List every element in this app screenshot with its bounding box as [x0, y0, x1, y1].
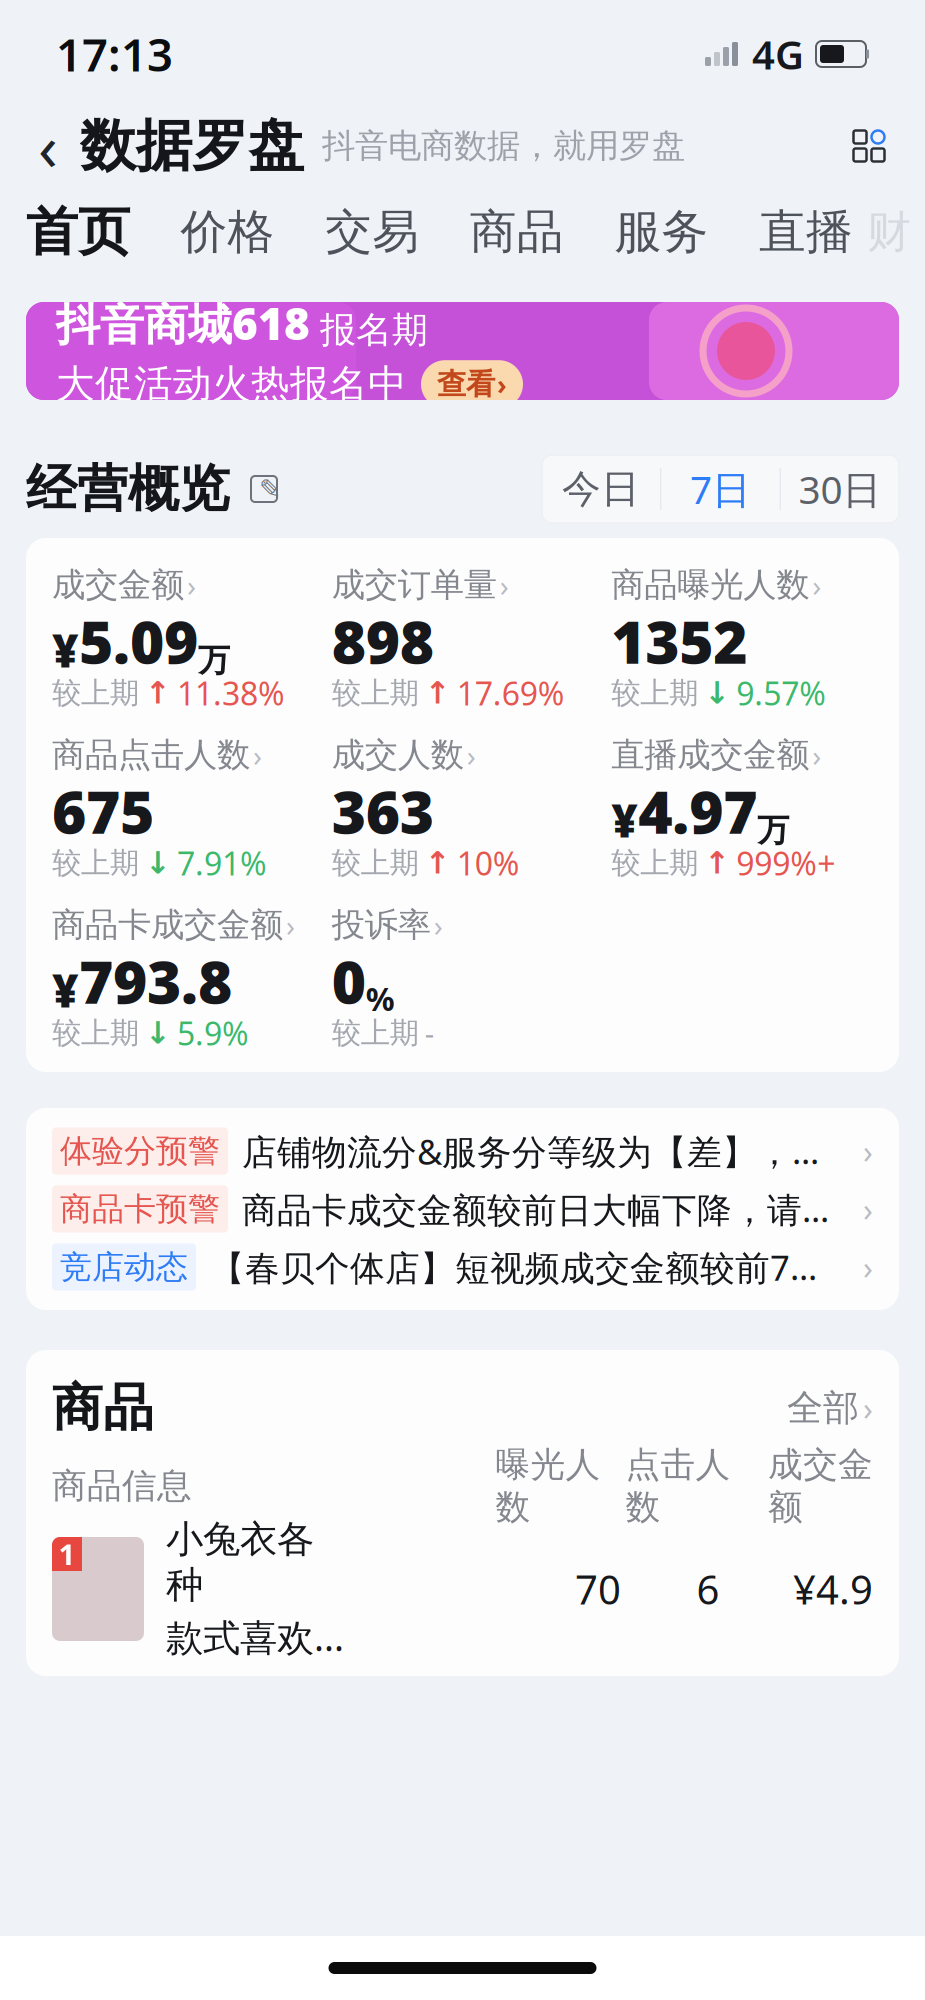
button[interactable]: 竞店动态 [52, 1238, 873, 1296]
staticText: 793.8 [79, 942, 232, 1020]
button[interactable]: Edit metrics [244, 469, 284, 509]
staticText: 商品信息 [52, 1465, 192, 1507]
staticText: 大促活动火热报名中 [56, 360, 407, 408]
staticText: 675 [52, 772, 154, 850]
staticText: 小兔衣各种 [166, 1516, 314, 1608]
staticText: 投诉率 [332, 904, 431, 945]
staticText: 商品点击人数 [52, 734, 250, 775]
staticText: › [187, 565, 196, 604]
staticText: % [366, 977, 395, 1020]
button[interactable]: 商品 [470, 200, 564, 264]
button[interactable]: 成交订单量 [332, 568, 593, 708]
button[interactable]: 直播成交金额 [611, 738, 873, 878]
staticText: ¥ [611, 790, 638, 850]
button[interactable]: 商品点击人数 [52, 738, 314, 878]
staticText: 数据罗盘 [80, 112, 304, 180]
staticText: 1 [58, 1534, 75, 1573]
staticText: ‹ [38, 103, 58, 188]
staticText: 1352 [611, 602, 747, 680]
staticText: 6 [696, 1562, 719, 1615]
staticText: 竞店动态 [60, 1247, 188, 1287]
staticText: › [434, 905, 443, 944]
staticText: › [467, 735, 476, 774]
staticText: › [863, 1130, 873, 1172]
staticText: 查看 [437, 366, 495, 402]
staticText: 店铺物流分&服务分等级为【差】，影响... [242, 1128, 831, 1174]
staticText: 今日 [562, 465, 640, 513]
staticText: 商品卡成交金额 [52, 904, 283, 945]
staticText: 直播 [759, 203, 853, 261]
staticText: 较上期 [52, 675, 139, 711]
staticText: ↓ [704, 676, 730, 710]
staticText: - [425, 1013, 434, 1052]
staticText: 5.9% [177, 1012, 249, 1054]
staticText: ✎ [259, 474, 281, 504]
staticText: 成交订单量 [332, 564, 497, 605]
staticText: 直播成交金额 [611, 734, 809, 775]
button[interactable]: 首页 [26, 200, 130, 264]
staticText: 7.91% [177, 842, 267, 884]
button[interactable]: 商品卡成交金额 [52, 908, 314, 1048]
staticText: ¥ [52, 960, 79, 1020]
staticText: 较上期 [52, 845, 139, 881]
button[interactable]: 交易 [325, 200, 419, 264]
staticText: 11.38% [177, 672, 285, 714]
staticText: 全部 [787, 1386, 859, 1430]
staticText: 经营概览 [26, 458, 230, 520]
staticText: 财 [867, 205, 911, 259]
staticText: 抖音电商数据，就用罗盘 [322, 125, 685, 166]
staticText: 万 [198, 641, 230, 680]
staticText: 成交人数 [332, 734, 464, 775]
staticText: 商品 [52, 1377, 154, 1439]
staticText: › [500, 565, 509, 604]
button[interactable]: 价格 [181, 200, 275, 264]
staticText: › [253, 735, 262, 774]
staticText: 成交金额 [768, 1443, 873, 1529]
button[interactable]: 商品卡预警 [52, 1180, 873, 1238]
button[interactable]: 今日 [542, 455, 660, 523]
staticText: 5.09 [79, 602, 198, 680]
button[interactable]: 商品曝光人数 [611, 568, 873, 708]
staticText: ¥4.9 [793, 1562, 873, 1615]
staticText: 17:13 [56, 24, 173, 84]
button[interactable]: 抖音商城618 [26, 302, 899, 400]
staticText: ↑ [425, 846, 451, 880]
staticText: 商品曝光人数 [611, 564, 809, 605]
button[interactable]: 投诉率 [332, 908, 593, 1048]
staticText: 万 [757, 811, 789, 850]
button[interactable]: 服务 [614, 200, 708, 264]
button[interactable]: 成交金额 [52, 568, 314, 708]
staticText: › [863, 1246, 873, 1288]
staticText: 体验分预警 [60, 1131, 220, 1171]
staticText: 点击人数 [625, 1443, 730, 1529]
button[interactable]: 体验分预警 [52, 1122, 873, 1180]
staticText: 363 [332, 772, 434, 850]
staticText: ↑ [425, 676, 451, 710]
staticText: ↑ [704, 846, 730, 880]
staticText: 较上期 [52, 1015, 139, 1051]
staticText: 较上期 [611, 845, 698, 881]
staticText: 成交金额 [52, 564, 184, 605]
staticText: 交易 [325, 203, 419, 261]
button[interactable]: All tools [839, 116, 899, 176]
staticText: 服务 [614, 203, 708, 261]
staticText: 较上期 [611, 675, 698, 711]
button[interactable]: Back [26, 116, 70, 176]
button[interactable]: 7日 [661, 455, 779, 523]
staticText: 商品卡预警 [60, 1189, 220, 1229]
button[interactable]: 1 [52, 1524, 873, 1654]
staticText: 较上期 [332, 675, 419, 711]
button[interactable]: 30日 [781, 455, 899, 523]
staticText: 4.97 [638, 772, 757, 850]
button[interactable]: 成交人数 [332, 738, 593, 878]
staticText: 较上期 [332, 845, 419, 881]
button[interactable]: 直播 [759, 200, 853, 264]
staticText: ¥ [52, 620, 79, 680]
staticText: › [286, 905, 295, 944]
staticText: 商品卡成交金额较前日大幅下降，请关注 [242, 1186, 831, 1232]
button[interactable]: 全部 [787, 1383, 873, 1433]
staticText: 7日 [690, 463, 751, 515]
staticText: › [812, 735, 821, 774]
staticText: 报名期 [320, 308, 428, 352]
staticText: 9.57% [736, 672, 826, 714]
